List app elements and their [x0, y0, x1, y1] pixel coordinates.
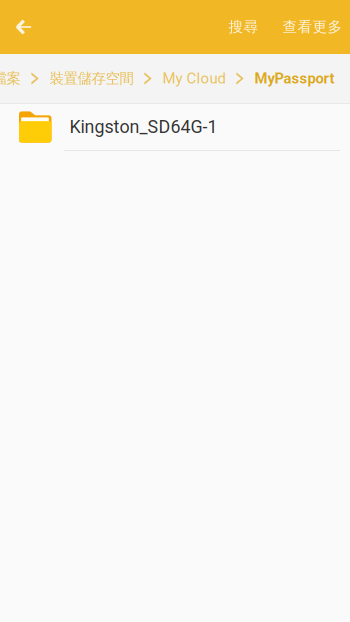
button[interactable]: Back [0, 0, 47, 54]
button[interactable]: 搜尋 [215, 0, 270, 54]
button[interactable]: 裝置儲存空間 [49, 69, 133, 87]
button[interactable]: 檔案 [0, 69, 20, 87]
staticText: Kingston_SD64G-1 [69, 116, 217, 137]
staticText: 搜尋 [228, 18, 258, 36]
staticText: MyPassport [254, 70, 334, 87]
button[interactable]: Kingston_SD64G-1 [0, 104, 350, 151]
staticText: 檔案 [0, 69, 20, 87]
button[interactable]: MyPassport [254, 70, 334, 87]
staticText: My Cloud [162, 70, 225, 87]
button[interactable]: My Cloud [162, 70, 225, 87]
staticText: 查看更多 [282, 18, 342, 36]
button[interactable]: 查看更多 [270, 0, 350, 54]
staticText: 裝置儲存空間 [49, 69, 133, 87]
